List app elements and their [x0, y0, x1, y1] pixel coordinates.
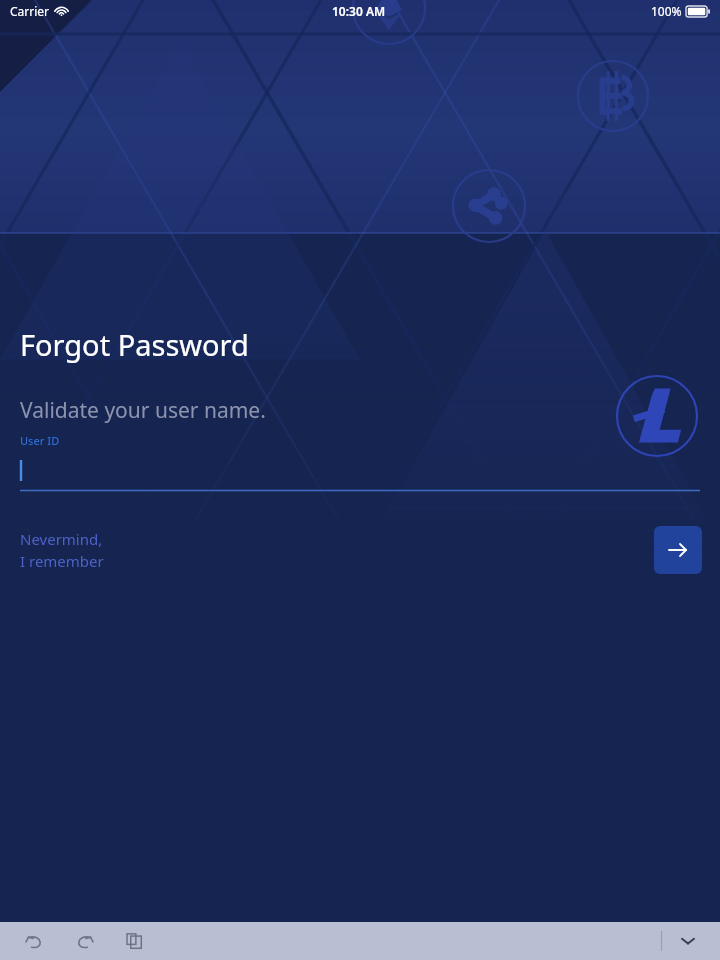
- staticText: User ID: [20, 433, 60, 448]
- staticText: Validate your user name.: [20, 396, 266, 425]
- staticText: I remember: [20, 551, 104, 571]
- staticText: Forgot Password: [20, 325, 249, 364]
- button[interactable]: Nevermind,: [20, 529, 104, 571]
- button[interactable]: Hide keyboard: [672, 925, 704, 957]
- staticText: Carrier: [10, 3, 50, 19]
- button[interactable]: Submit: [654, 526, 702, 574]
- button[interactable]: [20, 448, 700, 492]
- button[interactable]: Paste: [116, 923, 152, 959]
- staticText: 10:30 AM: [332, 3, 386, 19]
- staticText: Nevermind,: [20, 529, 103, 549]
- staticText: 100%: [651, 3, 682, 19]
- button[interactable]: Undo: [16, 923, 52, 959]
- button[interactable]: Redo: [66, 923, 102, 959]
